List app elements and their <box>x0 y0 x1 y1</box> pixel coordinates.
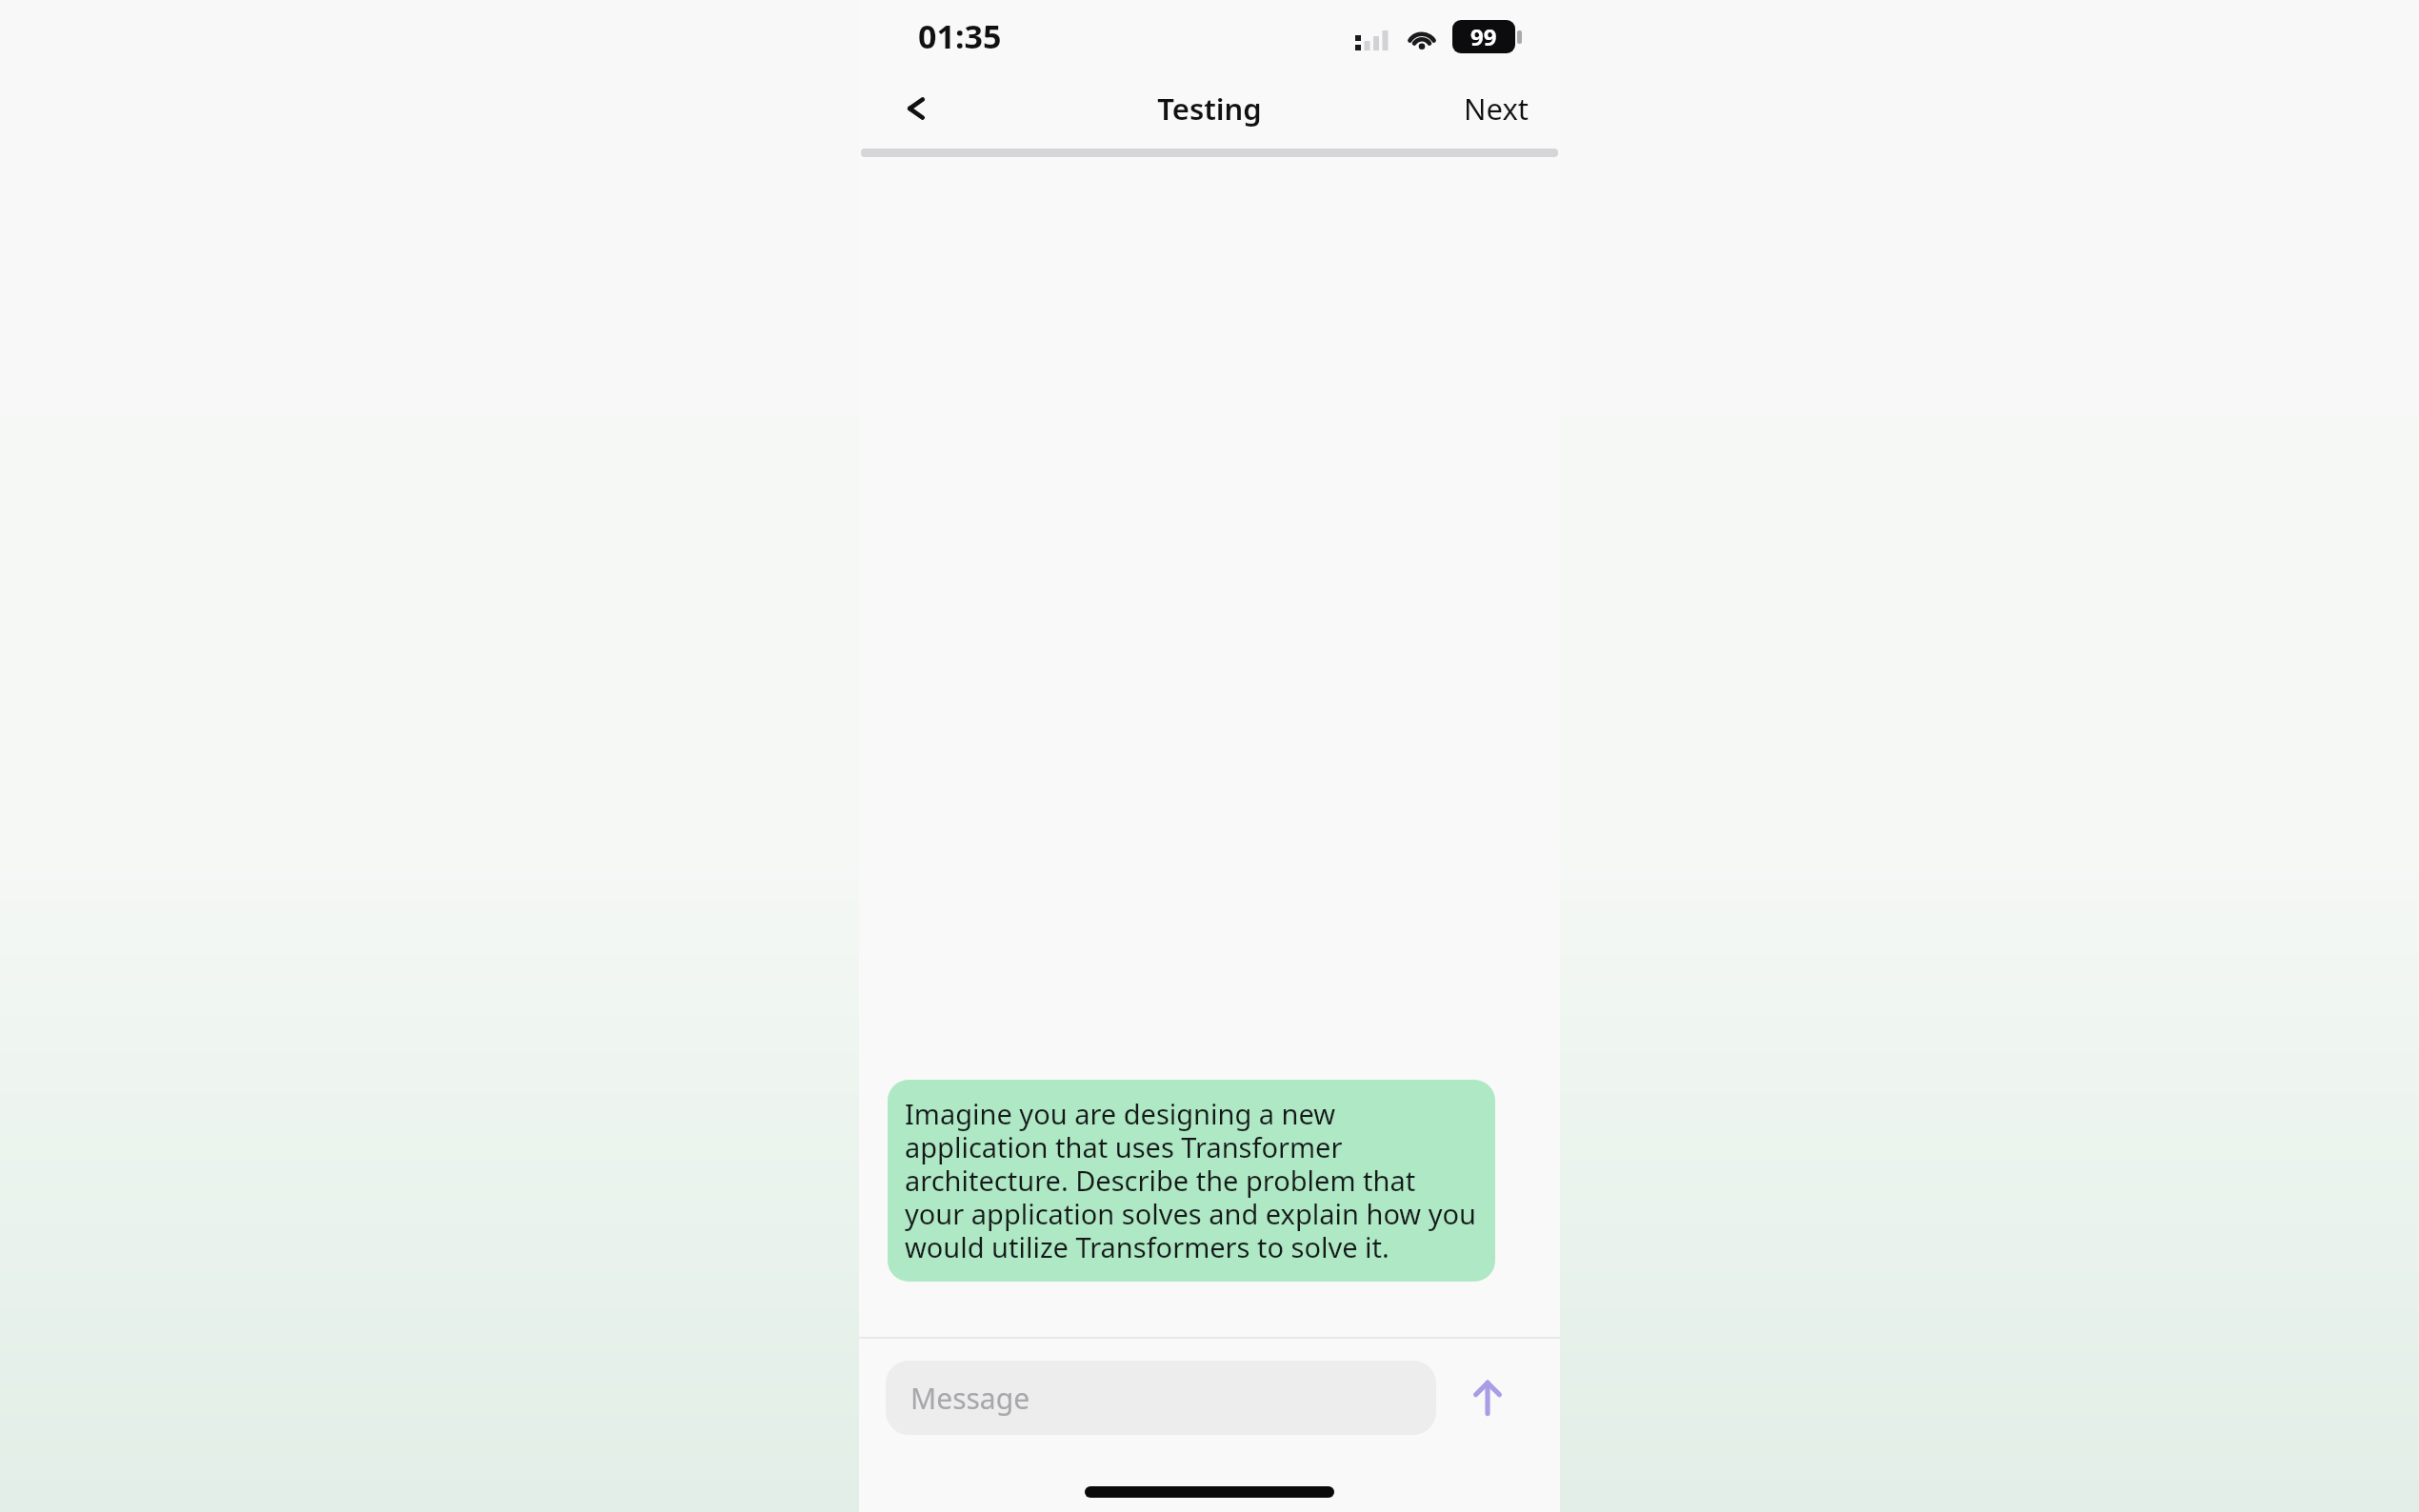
staticText: Imagine you are designing a new applicat… <box>905 1095 1478 1266</box>
button[interactable]: Send <box>1436 1346 1539 1449</box>
button[interactable]: Back <box>882 74 950 143</box>
staticText: Message <box>910 1379 1030 1418</box>
button[interactable]: Message <box>886 1361 1436 1435</box>
button[interactable]: Next <box>1450 79 1543 138</box>
button[interactable]: Imagine you are designing a new applicat… <box>888 1080 1495 1282</box>
staticText: 01:35 <box>918 14 1002 58</box>
staticText: Next <box>1464 89 1529 129</box>
staticText: Testing <box>1157 89 1262 129</box>
staticText: 99 <box>1470 21 1497 52</box>
